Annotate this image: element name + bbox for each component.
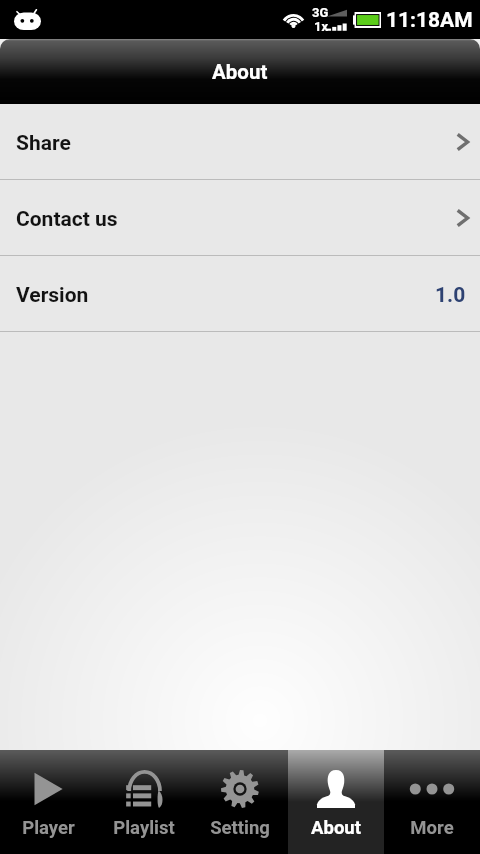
button[interactable]: Playlist bbox=[96, 750, 192, 854]
staticText: Version bbox=[16, 283, 89, 308]
staticText: Setting bbox=[210, 817, 270, 839]
staticText: 3G bbox=[312, 5, 329, 20]
staticText: 11:18AM bbox=[386, 8, 473, 33]
button[interactable]: Share bbox=[0, 104, 480, 179]
staticText: About bbox=[311, 817, 361, 839]
button[interactable]: Version bbox=[0, 256, 480, 331]
button[interactable]: Setting bbox=[192, 750, 288, 854]
staticText: 1x bbox=[314, 19, 329, 34]
staticText: 1.0 bbox=[435, 283, 466, 308]
button[interactable]: About bbox=[288, 750, 384, 854]
staticText: Player bbox=[22, 817, 75, 839]
button[interactable]: More bbox=[384, 750, 480, 854]
staticText: Contact us bbox=[16, 207, 118, 232]
staticText: Share bbox=[16, 131, 71, 156]
staticText: About bbox=[212, 60, 268, 84]
staticText: More bbox=[410, 817, 454, 839]
button[interactable]: Player bbox=[0, 750, 96, 854]
button[interactable]: Contact us bbox=[0, 180, 480, 255]
staticText: Playlist bbox=[113, 817, 175, 839]
